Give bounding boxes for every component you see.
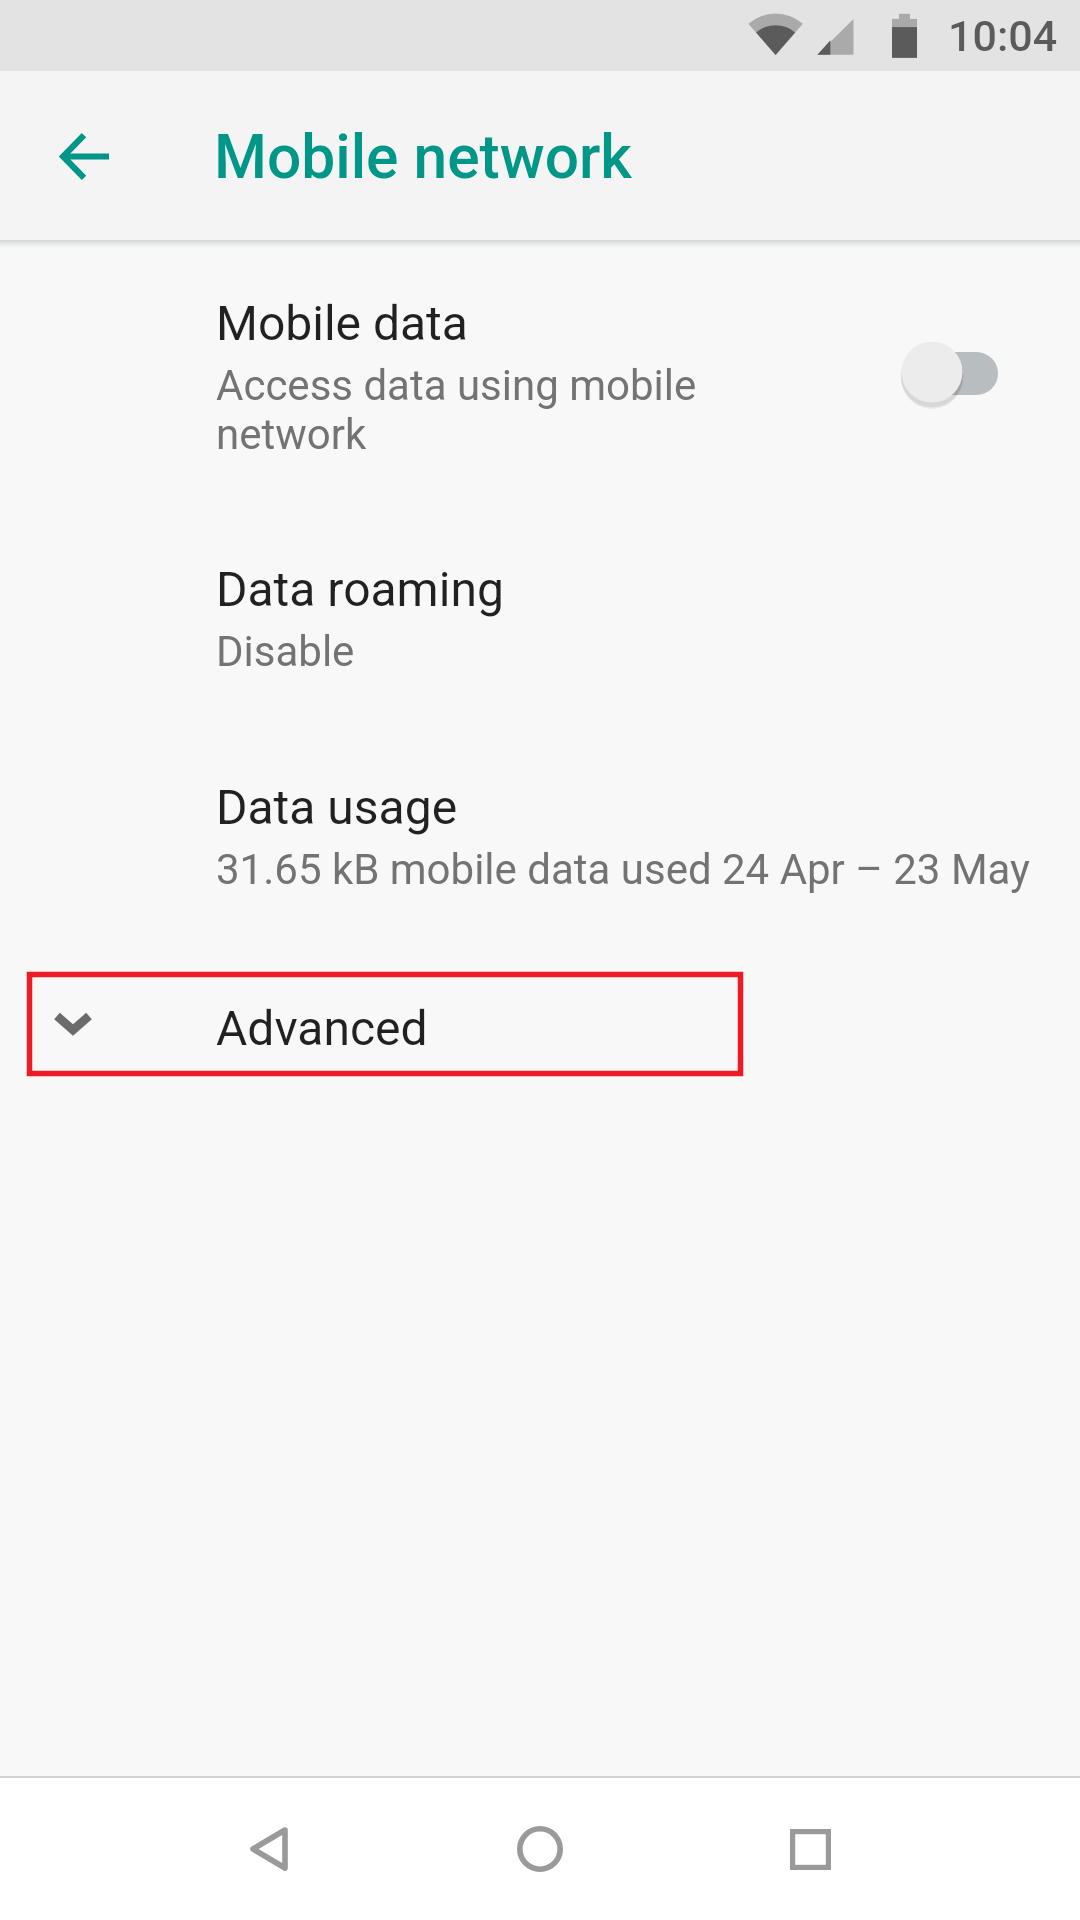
other: Battery <box>892 13 917 58</box>
staticText: Disable <box>216 627 355 676</box>
button[interactable]: Navigate up <box>28 100 140 212</box>
button[interactable]: Home <box>470 1779 610 1919</box>
other: Signal strength <box>817 18 854 55</box>
button[interactable]: Advanced <box>0 972 1080 1076</box>
staticText: 10:04 <box>948 11 1058 61</box>
staticText: Advanced <box>216 1000 428 1056</box>
button[interactable]: Recent apps <box>740 1779 880 1919</box>
staticText: 31.65 kB mobile data used 24 Apr – 23 Ma… <box>216 845 1030 894</box>
button[interactable]: Mobile data <box>0 262 1080 478</box>
staticText: Mobile data <box>216 295 468 351</box>
staticText: Access data using mobile network <box>216 361 697 459</box>
button[interactable]: Data usage <box>0 746 1080 904</box>
staticText: Mobile network <box>214 122 632 193</box>
button[interactable]: Data roaming <box>0 528 1080 686</box>
button[interactable]: Mobile data switch <box>879 324 1019 416</box>
button[interactable]: Back <box>200 1779 340 1919</box>
other: Wi-Fi <box>735 5 817 63</box>
staticText: Data roaming <box>216 561 504 617</box>
staticText: Data usage <box>216 779 458 835</box>
